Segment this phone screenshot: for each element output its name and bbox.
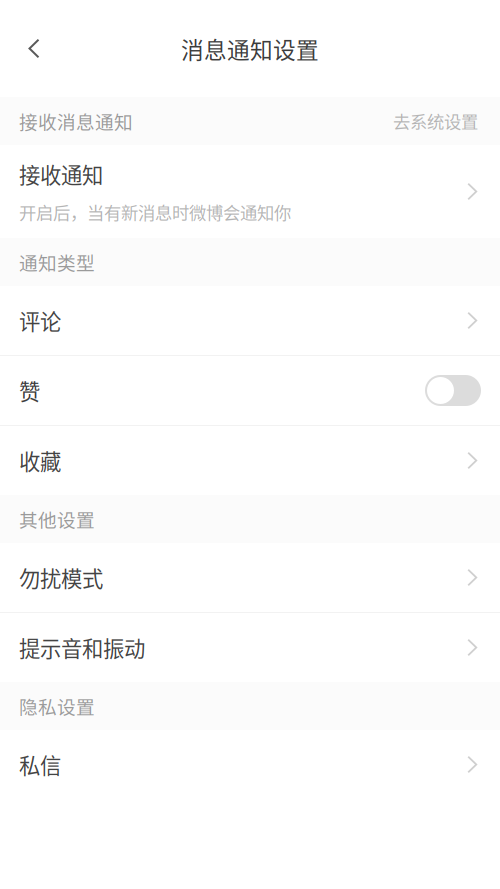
- button[interactable]: 私信: [0, 730, 500, 799]
- button[interactable]: 勿扰模式: [0, 543, 500, 612]
- staticText: 接收消息通知: [19, 107, 133, 134]
- button[interactable]: 评论: [0, 286, 500, 355]
- button[interactable]: 接收通知: [0, 145, 500, 238]
- staticText: 去系统设置: [393, 108, 478, 134]
- button[interactable]: 赞: [0, 356, 500, 425]
- button[interactable]: 返回: [0, 18, 64, 78]
- button[interactable]: 提示音和振动: [0, 613, 500, 682]
- staticText: 评论: [19, 305, 61, 336]
- staticText: 赞: [19, 375, 40, 406]
- staticText: 私信: [19, 749, 61, 780]
- staticText: 开启后，当有新消息时微博会通知你: [19, 199, 291, 224]
- staticText: 隐私设置: [19, 692, 95, 719]
- button[interactable]: 去系统设置: [393, 108, 478, 134]
- staticText: 提示音和振动: [19, 632, 145, 663]
- staticText: 通知类型: [19, 248, 95, 275]
- staticText: 接收通知: [19, 158, 103, 189]
- staticText: 收藏: [19, 445, 61, 476]
- staticText: 其他设置: [19, 505, 95, 532]
- button[interactable]: 收藏: [0, 426, 500, 495]
- staticText: 勿扰模式: [19, 562, 103, 593]
- staticText: 消息通知设置: [181, 32, 319, 65]
